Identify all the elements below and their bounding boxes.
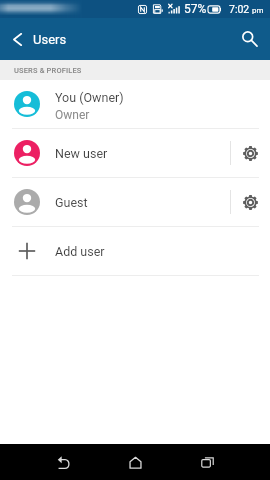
button[interactable]: Guest: [0, 178, 270, 226]
button[interactable]: User settings: [231, 129, 270, 177]
staticText: New user: [55, 146, 108, 161]
staticText: pm: [252, 6, 264, 15]
button[interactable]: User settings: [231, 178, 270, 226]
staticText: 57%: [184, 2, 207, 16]
button[interactable]: You (Owner): [0, 80, 270, 128]
button[interactable]: Search: [230, 18, 270, 60]
staticText: USERS & PROFILES: [14, 66, 82, 75]
staticText: You (Owner): [55, 90, 124, 105]
button[interactable]: New user: [0, 129, 270, 177]
button[interactable]: Recent apps: [180, 444, 235, 480]
staticText: Users: [33, 32, 67, 47]
staticText: Owner: [55, 108, 90, 122]
staticText: 7:02: [229, 3, 250, 15]
button[interactable]: Home: [108, 444, 163, 480]
button[interactable]: Add user: [0, 227, 270, 275]
staticText: Guest: [55, 195, 88, 210]
button[interactable]: Navigate up: [0, 18, 33, 60]
staticText: Add user: [55, 244, 105, 259]
button[interactable]: Back: [36, 444, 91, 480]
